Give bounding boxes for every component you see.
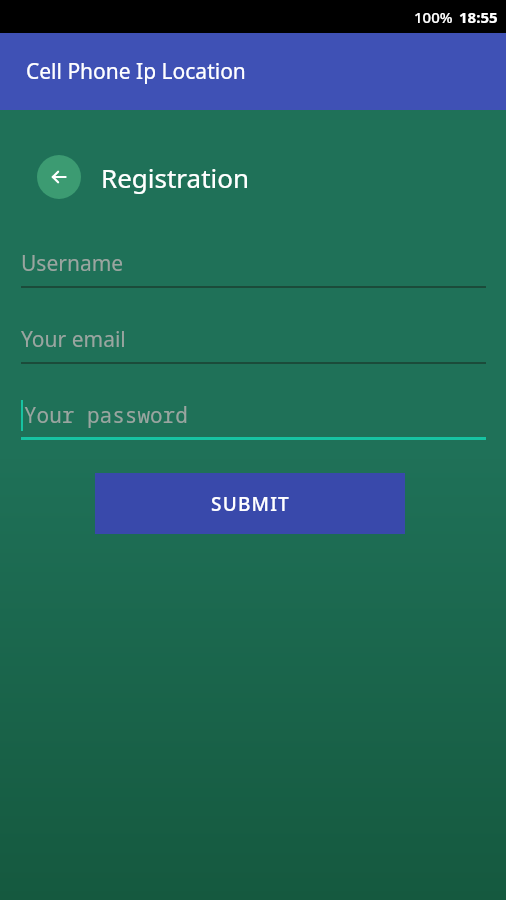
- staticText: Your email: [21, 325, 126, 354]
- staticText: 100%: [414, 7, 453, 27]
- button[interactable]: Username: [21, 244, 486, 288]
- staticText: Username: [21, 249, 124, 278]
- staticText: Registration: [101, 160, 250, 195]
- staticText: SUBMIT: [211, 491, 290, 517]
- button[interactable]: Your email: [21, 320, 486, 364]
- button[interactable]: SUBMIT: [95, 473, 405, 534]
- staticText: 18:55: [459, 7, 498, 27]
- staticText: Your password: [24, 401, 188, 430]
- staticText: Cell Phone Ip Location: [26, 57, 246, 86]
- button[interactable]: Back: [37, 155, 81, 199]
- button[interactable]: Your password: [21, 396, 486, 440]
